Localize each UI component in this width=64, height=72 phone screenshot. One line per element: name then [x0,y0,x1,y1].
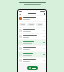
button[interactable]: Primary action [27,66,38,70]
button[interactable]: Edit [18,16,46,21]
button[interactable] [19,23,26,26]
button[interactable]: Edit [43,18,45,20]
button[interactable] [18,40,46,45]
button[interactable] [18,34,46,39]
button[interactable] [18,52,46,57]
button[interactable] [18,46,46,51]
button[interactable]: Back [19,13,21,15]
button[interactable] [18,28,46,33]
button[interactable]: More options [43,13,45,15]
button[interactable] [18,58,46,63]
button[interactable] [27,23,35,26]
button[interactable] [36,23,43,26]
